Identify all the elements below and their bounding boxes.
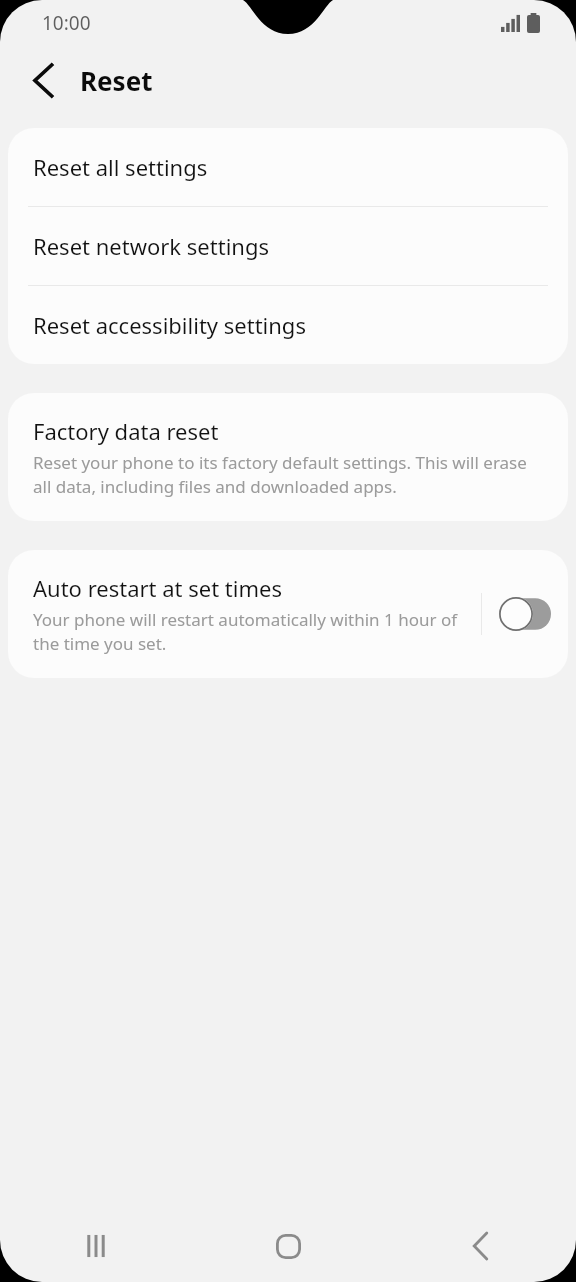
button[interactable]: Reset network settings — [8, 207, 568, 285]
button[interactable]: Reset all settings — [8, 128, 568, 206]
button[interactable]: Back — [384, 1210, 576, 1282]
button[interactable]: Reset accessibility settings — [8, 286, 568, 364]
button[interactable]: Auto restart toggle — [482, 575, 568, 653]
button[interactable]: Recents — [0, 1210, 192, 1282]
staticText: Factory data reset — [33, 416, 219, 446]
staticText: Reset your phone to its factory default … — [33, 451, 543, 498]
staticText: Reset — [80, 63, 153, 98]
staticText: Reset accessibility settings — [33, 310, 306, 340]
staticText: Reset all settings — [33, 152, 208, 182]
button[interactable]: Home — [192, 1210, 384, 1282]
button[interactable]: Factory data reset — [8, 393, 568, 521]
staticText: Reset network settings — [33, 231, 269, 261]
button[interactable]: Auto restart at set times — [8, 550, 481, 678]
staticText: Your phone will restart automatically wi… — [33, 608, 469, 655]
staticText: Auto restart at set times — [33, 573, 282, 603]
button[interactable]: Back — [19, 56, 67, 104]
staticText: 10:00 — [42, 10, 91, 36]
